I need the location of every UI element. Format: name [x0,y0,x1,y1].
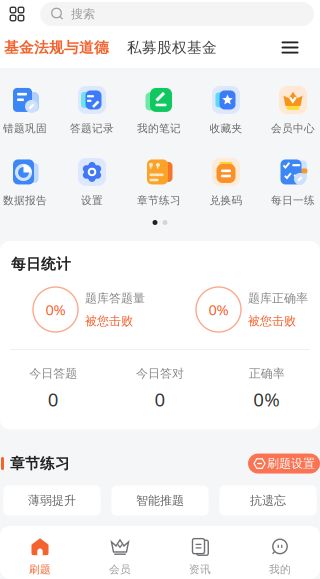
button[interactable]: 会员中心 [262,86,320,135]
staticText: 答题记录 [70,122,114,135]
staticText: 今日答题 [29,366,77,381]
staticText: 被您击败 [85,313,133,328]
button[interactable]: All categories [6,1,28,27]
staticText: 刷题 [29,563,51,576]
staticText: 每日一练 [271,194,315,207]
staticText: 0 [154,387,165,412]
staticText: 抗遗忘 [250,493,286,508]
button[interactable]: 数据报告 [0,158,56,207]
staticText: 收藏夹 [209,122,242,135]
button[interactable]: Menu [274,32,306,62]
staticText: 章节练习 [137,194,181,207]
button[interactable]: 每日一练 [262,158,320,207]
staticText: 我的笔记 [137,122,181,135]
button[interactable]: 会员 [80,526,160,579]
staticText: 章节练习 [10,454,70,472]
button[interactable]: 抗遗忘 [219,485,316,515]
staticText: 资讯 [189,563,211,576]
staticText: 错题巩固 [3,122,47,135]
staticText: 智能推题 [136,493,184,508]
staticText: 0% [253,387,280,412]
staticText: 正确率 [249,366,285,381]
button[interactable]: 刷题 [0,526,80,579]
button[interactable]: 我的笔记 [128,86,190,135]
staticText: 今日答对 [136,366,184,381]
button[interactable]: 设置 [61,158,123,207]
staticText: 被您击败 [248,313,296,328]
staticText: 设置 [81,194,103,207]
staticText: 搜索 [71,7,95,21]
staticText: 私募股权基金 [127,38,217,56]
button[interactable]: 我的 [240,526,320,579]
button[interactable]: 智能推题 [111,485,208,515]
staticText: 题库答题量 [85,291,145,305]
button[interactable]: 基金法规与道德 [0,32,113,62]
staticText: 薄弱提升 [28,493,76,508]
staticText: 兑换码 [209,194,242,207]
staticText: 刷题设置 [267,456,315,471]
button[interactable]: 薄弱提升 [3,485,100,515]
staticText: 数据报告 [3,194,47,207]
staticText: 基金法规与道德 [4,38,109,56]
staticText: 0 [48,387,59,412]
staticText: 我的 [269,563,291,576]
staticText: 0% [45,300,65,319]
staticText: 0% [208,300,228,319]
button[interactable]: 答题记录 [61,86,123,135]
button[interactable]: 兑换码 [195,158,257,207]
button[interactable]: 收藏夹 [195,86,257,135]
staticText: 题库正确率 [248,291,308,305]
button[interactable]: 章节练习 [128,158,190,207]
button[interactable]: 错题巩固 [0,86,56,135]
button[interactable]: 资讯 [160,526,240,579]
staticText: 每日统计 [11,255,71,273]
staticText: 会员中心 [271,122,315,135]
button[interactable]: 刷题设置 [248,453,320,473]
staticText: 会员 [109,563,131,576]
button[interactable]: 私募股权基金 [123,32,221,62]
